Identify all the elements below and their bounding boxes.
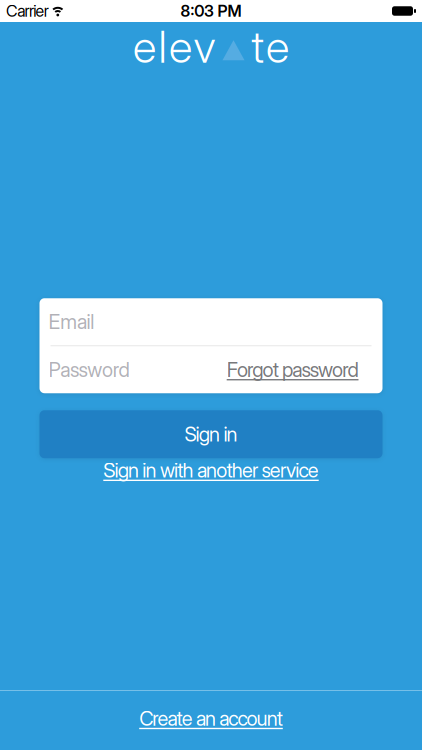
staticText: Create an account <box>139 706 283 731</box>
button[interactable]: Sign in <box>39 410 382 458</box>
staticText: Sign in with another service <box>103 458 319 482</box>
staticText: Carrier <box>6 1 49 21</box>
button[interactable]: Forgot password <box>227 358 358 382</box>
staticText: Forgot password <box>227 358 358 382</box>
staticText: Email <box>48 310 94 334</box>
staticText: elev <box>133 20 215 73</box>
staticText: te <box>251 20 289 73</box>
button[interactable]: Create an account <box>0 691 422 750</box>
staticText: Sign in <box>184 422 238 446</box>
button[interactable]: Sign in with another service <box>95 458 327 482</box>
staticText: 8:03 PM <box>181 1 241 21</box>
staticText: Password <box>48 358 129 382</box>
